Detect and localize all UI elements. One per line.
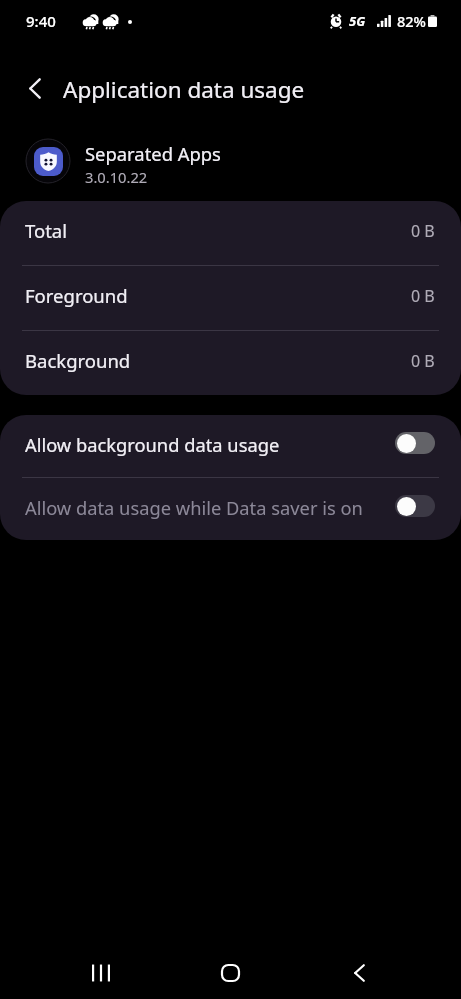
staticText: 0 B bbox=[411, 285, 435, 307]
button[interactable]: Foreground bbox=[0, 266, 461, 330]
button[interactable]: Home bbox=[178, 947, 283, 999]
staticText: 5G bbox=[349, 12, 366, 30]
staticText: Total bbox=[25, 218, 68, 243]
button[interactable]: Navigate up bbox=[12, 65, 58, 111]
staticText: Allow data usage while Data saver is on bbox=[25, 495, 363, 520]
button[interactable]: Recents bbox=[48, 947, 153, 999]
button[interactable]: Allow background data usage bbox=[0, 415, 461, 477]
button[interactable]: Background bbox=[0, 331, 461, 395]
button[interactable]: Total bbox=[0, 201, 461, 265]
staticText: 82% bbox=[397, 11, 426, 31]
staticText: Application data usage bbox=[63, 74, 305, 105]
button[interactable]: Allow data usage while Data saver is on bbox=[0, 478, 461, 540]
staticText: 9:40 bbox=[26, 11, 56, 31]
staticText: 0 B bbox=[411, 350, 435, 372]
staticText: Background bbox=[25, 348, 131, 373]
button[interactable]: Back bbox=[307, 947, 412, 999]
staticText: Allow background data usage bbox=[25, 432, 280, 457]
staticText: 0 B bbox=[411, 220, 435, 242]
staticText: 3.0.10.22 bbox=[85, 167, 148, 187]
staticText: Separated Apps bbox=[85, 141, 221, 166]
staticText: Foreground bbox=[25, 283, 128, 308]
